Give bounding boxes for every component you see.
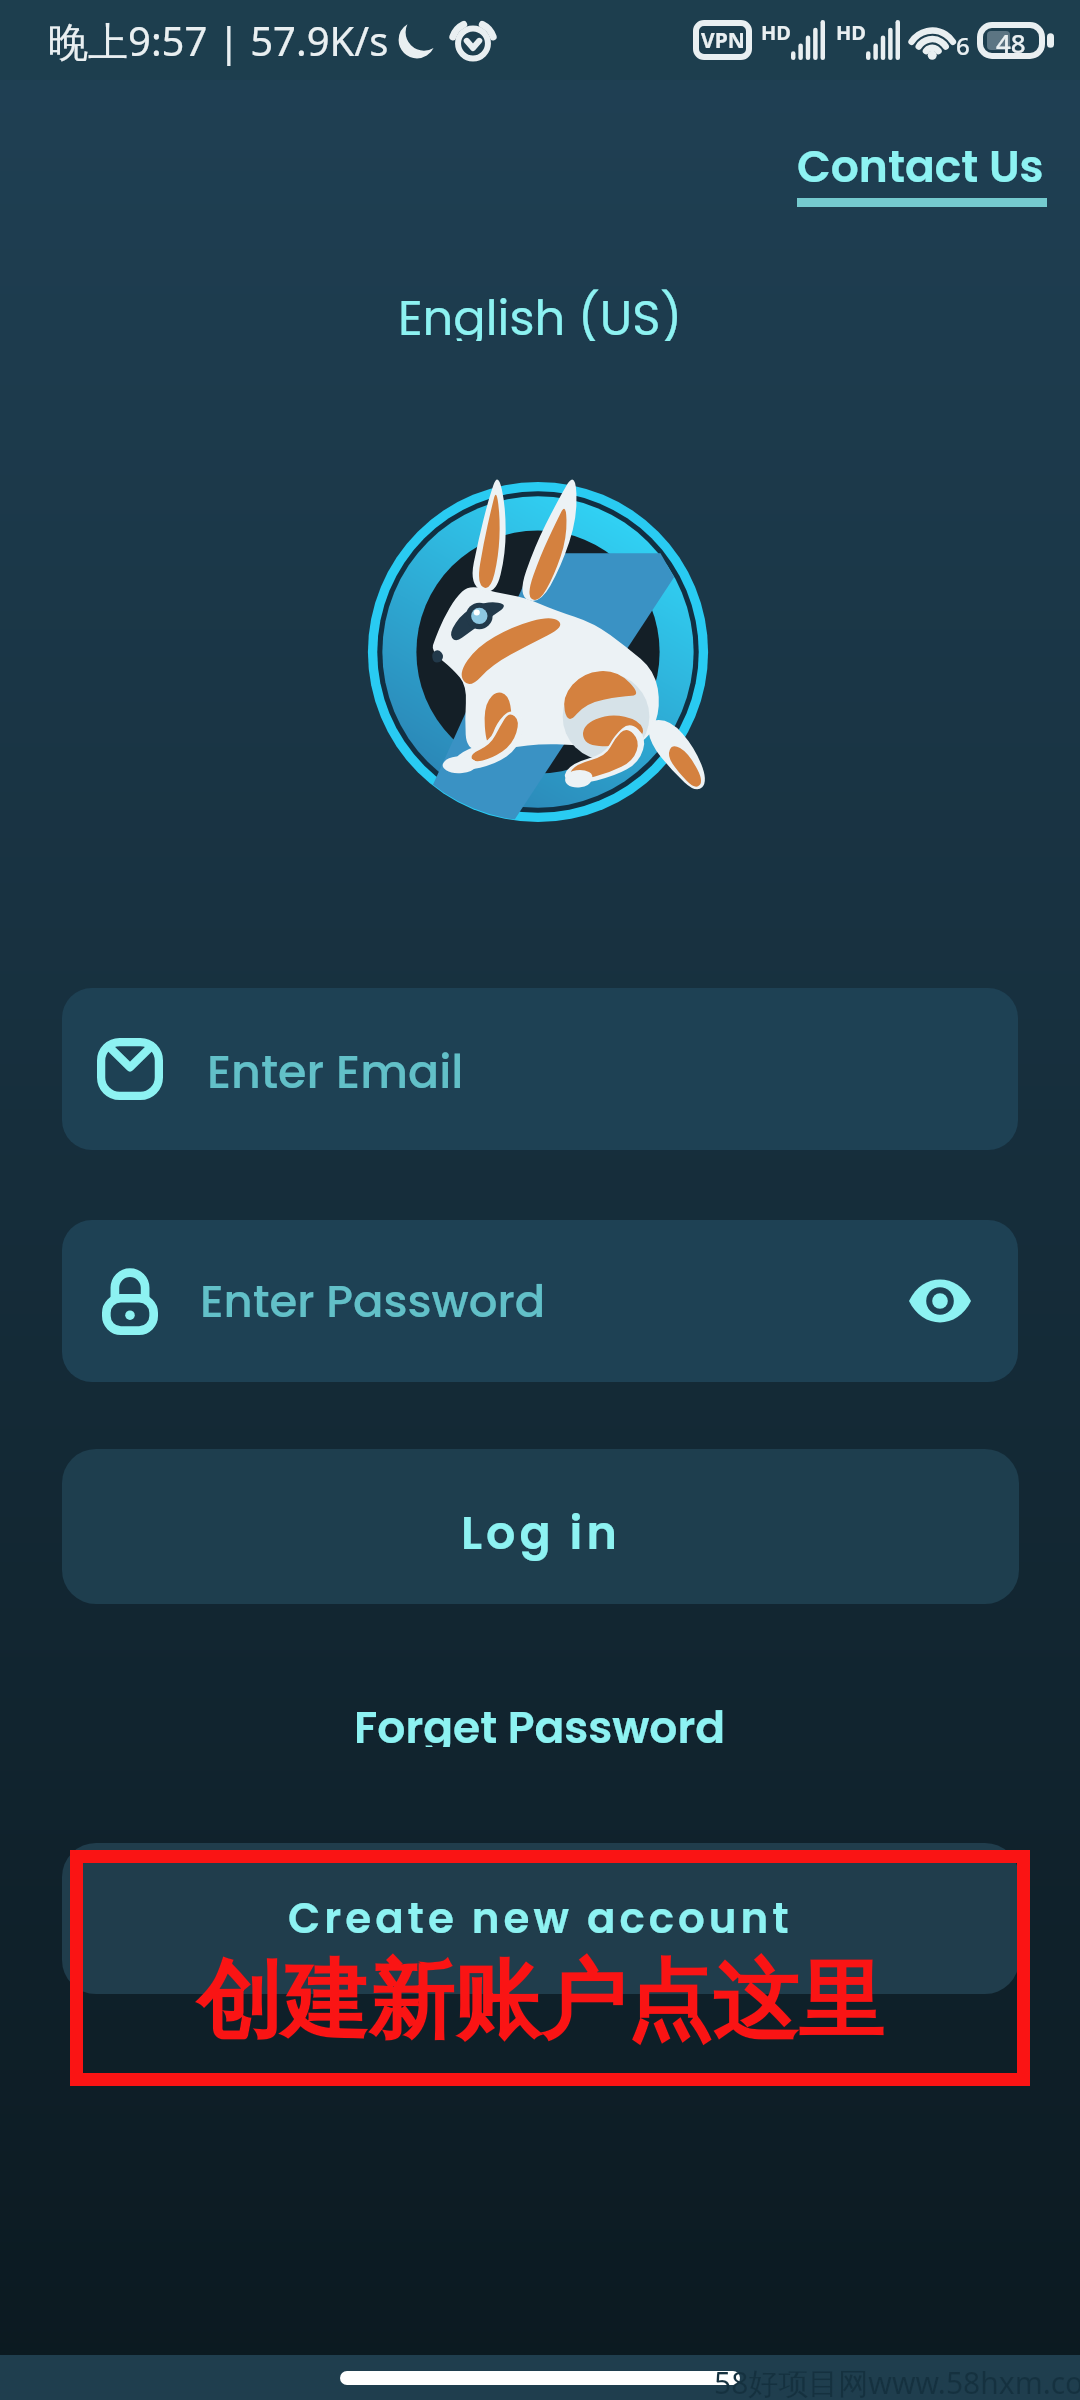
staticText: Create new account <box>288 1889 793 1948</box>
button[interactable]: Forget Password <box>336 1687 744 1757</box>
staticText: English (US) <box>398 285 683 341</box>
button[interactable]: Contact Us <box>777 122 1067 215</box>
button[interactable]: Create new account <box>62 1843 1019 1994</box>
staticText: 6 <box>956 29 970 62</box>
button[interactable]: Show password <box>900 1261 980 1341</box>
button[interactable]: Enter Email <box>62 988 1018 1150</box>
staticText: 晚上9:57 | 57.9K/s <box>48 13 389 68</box>
staticText: Enter Password <box>200 1270 546 1333</box>
button[interactable]: Enter Password <box>62 1220 1018 1382</box>
staticText: 58好项目网www.58hxm.com <box>714 2362 1080 2400</box>
staticText: 48 <box>996 25 1026 56</box>
staticText: Contact Us <box>797 136 1044 198</box>
staticText: Log in <box>461 1501 621 1565</box>
staticText: HD <box>761 19 791 46</box>
staticText: HD <box>836 19 866 46</box>
staticText: Forget Password <box>354 1697 726 1747</box>
button[interactable]: Log in <box>62 1449 1019 1604</box>
staticText: Enter Email <box>207 1040 464 1104</box>
button[interactable]: English (US) <box>380 275 701 351</box>
staticText: VPN <box>701 26 745 55</box>
staticText: 创建新账户点这里 <box>196 1947 884 2055</box>
